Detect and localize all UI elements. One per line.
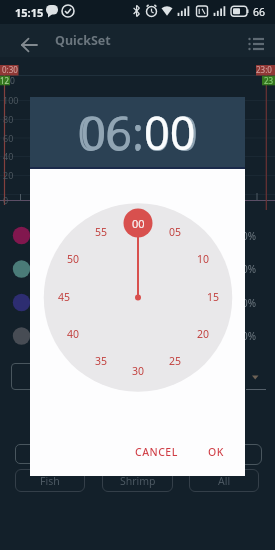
staticText: 40: [3, 150, 14, 162]
staticText: CANCEL: [135, 445, 178, 459]
staticText: 30: [132, 364, 145, 378]
staticText: 0%: [242, 229, 257, 243]
staticText: 23:0: [256, 64, 272, 75]
staticText: 40: [67, 327, 80, 341]
staticText: 12: [0, 75, 10, 86]
button[interactable]: OK: [203, 441, 229, 463]
staticText: 0: [10, 75, 15, 86]
staticText: Shrimp: [120, 474, 156, 488]
staticText: 10: [197, 252, 210, 266]
staticText: OK: [208, 445, 224, 459]
staticText: 00: [132, 216, 145, 231]
staticText: 80: [3, 113, 14, 125]
button[interactable]: Shrimp: [102, 469, 173, 492]
staticText: 66: [253, 5, 266, 19]
button[interactable]: 00: [124, 209, 153, 238]
staticText: 15:15: [15, 5, 44, 20]
staticText: Fish: [40, 474, 60, 488]
staticText: 25: [169, 354, 182, 368]
staticText: 50: [67, 252, 80, 266]
staticText: 23: [264, 75, 274, 86]
staticText: 20: [3, 169, 14, 181]
button[interactable]: Set: [11, 363, 71, 390]
staticText: 05: [169, 225, 182, 239]
staticText: 20: [197, 327, 210, 341]
staticText: 15: [207, 290, 220, 304]
staticText: QuickSet: [55, 32, 111, 49]
staticText: 100: [3, 94, 19, 106]
staticText: 0:30: [2, 64, 18, 75]
staticText: 0%: [242, 262, 257, 276]
staticText: 45: [58, 290, 71, 304]
staticText: 06:00: [80, 102, 196, 163]
staticText: 0: [3, 194, 9, 206]
staticText: 06:00: [77, 100, 199, 165]
button[interactable]: Fish: [15, 469, 85, 492]
staticText: All: [218, 474, 231, 488]
button[interactable]: CANCEL: [125, 441, 187, 463]
button[interactable]: [240, 24, 272, 57]
staticText: 35: [95, 354, 108, 368]
staticText: 0%: [242, 296, 257, 310]
staticText: 0%: [242, 329, 257, 343]
staticText: 60: [3, 132, 14, 144]
staticText: 55: [95, 225, 108, 239]
button[interactable]: All: [189, 469, 259, 492]
button[interactable]: [10, 24, 48, 57]
